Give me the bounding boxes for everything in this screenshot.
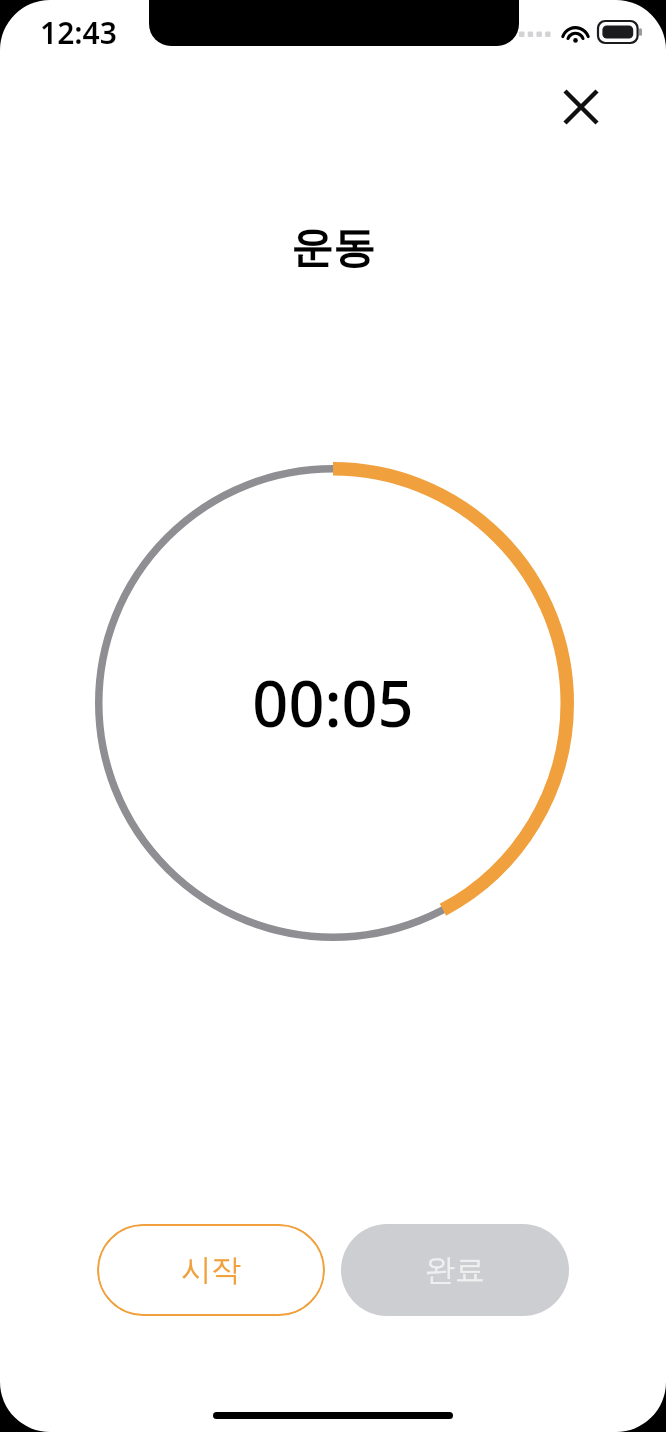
staticText: 완료 (425, 1251, 485, 1289)
staticText: 00:05 (252, 660, 414, 746)
button[interactable]: Close (539, 65, 623, 149)
staticText: 시작 (181, 1251, 241, 1289)
staticText: 12:43 (40, 12, 117, 53)
button[interactable]: 완료 (341, 1224, 569, 1316)
button[interactable]: 시작 (97, 1224, 325, 1316)
staticText: 운동 (0, 222, 666, 275)
